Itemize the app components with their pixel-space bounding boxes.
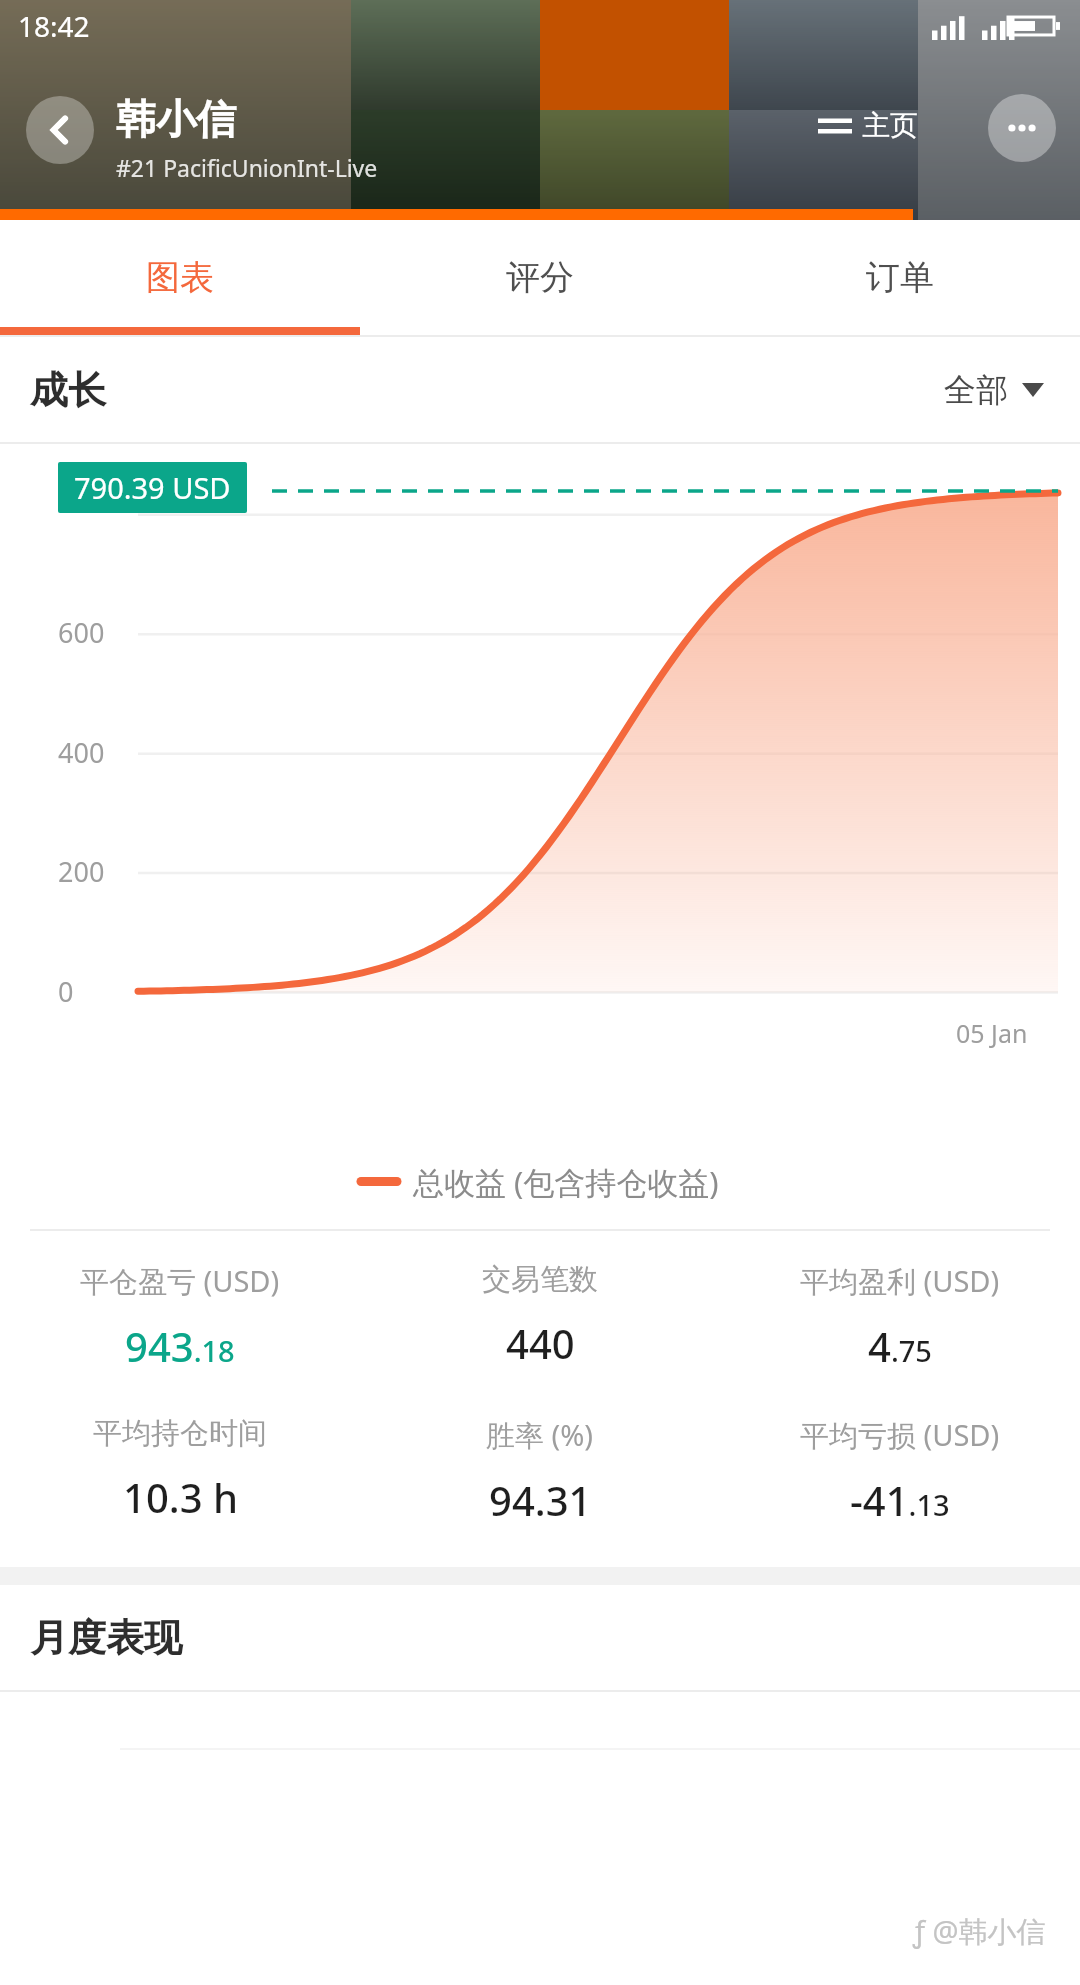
staticText: 4.75 (868, 1319, 932, 1373)
staticText: 平均持仓时间 (93, 1415, 267, 1452)
staticText: 成长 (30, 366, 106, 414)
staticText: 胜率 (%) (486, 1415, 594, 1455)
staticText: 600 (58, 614, 105, 651)
staticText: -41.13 (850, 1473, 950, 1527)
staticText: 10.3 h (123, 1470, 238, 1524)
staticText: 440 (506, 1316, 575, 1370)
button[interactable]: Back (26, 96, 94, 164)
staticText: 18:42 (18, 7, 90, 45)
staticText: 200 (58, 853, 105, 890)
button[interactable]: 平均持仓时间 (0, 1415, 360, 1524)
button[interactable]: 评分 (360, 220, 720, 335)
staticText: 94.31 (489, 1473, 592, 1527)
button[interactable]: 全部 (938, 364, 1050, 416)
staticText: 月度表现 (30, 1614, 182, 1662)
button[interactable]: 主页 (814, 104, 922, 147)
button[interactable]: 订单 (720, 220, 1080, 335)
staticText: 订单 (866, 256, 934, 299)
button[interactable]: 平均盈利 (USD) (720, 1261, 1080, 1373)
button[interactable]: 图表 (0, 220, 360, 335)
staticText: 全部 (944, 370, 1008, 410)
button[interactable]: More options (988, 94, 1056, 162)
staticText: 评分 (506, 256, 574, 299)
staticText: 韩小信 (116, 94, 236, 144)
staticText: #21 PacificUnionInt-Live (116, 152, 378, 183)
button[interactable]: 交易笔数 (360, 1261, 720, 1370)
staticText: 平仓盈亏 (USD) (80, 1261, 280, 1301)
staticText: 0 (58, 973, 74, 1010)
staticText: 400 (58, 734, 105, 771)
staticText: 943.18 (125, 1319, 235, 1373)
staticText: 平均亏损 (USD) (800, 1415, 1000, 1455)
staticText: 总收益 (包含持仓收益) (413, 1161, 719, 1203)
button[interactable]: 平均亏损 (USD) (720, 1415, 1080, 1527)
staticText: 平均盈利 (USD) (800, 1261, 1000, 1301)
staticText: 05 Jan (956, 1016, 1028, 1050)
staticText: ƒ @韩小信 (913, 1911, 1046, 1951)
staticText: 主页 (862, 108, 918, 143)
staticText: 图表 (146, 256, 214, 299)
staticText: 交易笔数 (482, 1261, 598, 1298)
button[interactable]: 胜率 (%) (360, 1415, 720, 1527)
button[interactable]: 平仓盈亏 (USD) (0, 1261, 360, 1373)
staticText: 790.39 USD (74, 468, 231, 507)
